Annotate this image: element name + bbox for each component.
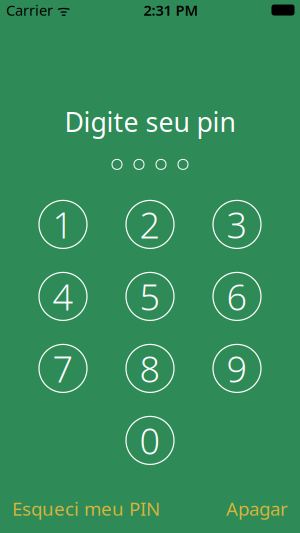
staticText: 3 (226, 200, 247, 248)
staticText: 0 (139, 416, 160, 464)
staticText: 4 (52, 272, 73, 320)
button[interactable]: 6 (207, 266, 267, 326)
staticText: 2:31 PM (143, 0, 198, 20)
button[interactable]: 4 (33, 266, 93, 326)
button[interactable]: 5 (120, 266, 180, 326)
staticText: 2 (139, 200, 160, 248)
staticText: 6 (226, 272, 247, 320)
button[interactable]: Esqueci meu PIN (0, 488, 172, 529)
staticText: Carrier (6, 0, 53, 20)
button[interactable]: 9 (207, 338, 267, 398)
button[interactable]: 7 (33, 338, 93, 398)
staticText: 8 (139, 344, 160, 392)
staticText: 5 (139, 272, 160, 320)
button[interactable]: Apagar (214, 488, 300, 529)
staticText: Digite seu pin (64, 104, 235, 139)
button[interactable]: 3 (207, 194, 267, 254)
button[interactable]: 2 (120, 194, 180, 254)
staticText: 1 (52, 200, 73, 248)
button[interactable]: 8 (120, 338, 180, 398)
staticText: Apagar (226, 496, 288, 521)
button[interactable]: 1 (33, 194, 93, 254)
button[interactable]: 0 (120, 410, 180, 470)
staticText: 9 (226, 344, 247, 392)
staticText: Esqueci meu PIN (12, 496, 160, 521)
staticText: ᯤ (53, 0, 70, 20)
staticText: 7 (52, 344, 73, 392)
